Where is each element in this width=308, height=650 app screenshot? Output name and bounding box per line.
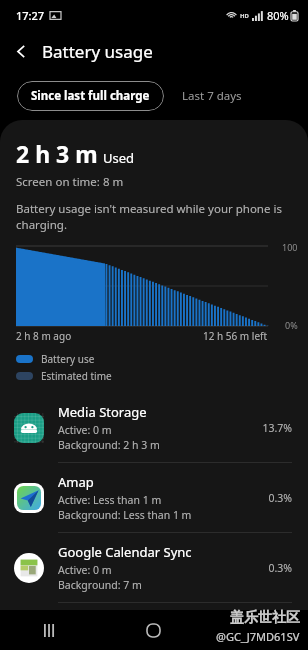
- staticText: 12 h 56 m left: [203, 329, 268, 343]
- staticText: Background: Less than 1 m: [58, 508, 192, 522]
- staticText: 0.3%: [268, 561, 292, 575]
- button[interactable]: Amap: [0, 463, 308, 532]
- staticText: Estimated time: [41, 369, 112, 383]
- button[interactable]: Since last full charge: [17, 81, 164, 111]
- staticText: 2 h 3 m: [16, 138, 98, 169]
- staticText: Used: [103, 149, 135, 167]
- staticText: 17:27: [16, 8, 45, 23]
- staticText: Battery use: [41, 352, 95, 366]
- staticText: Screen on time: 8 m: [16, 174, 124, 190]
- button[interactable]: Media Storage: [0, 393, 308, 462]
- staticText: Background: 7 m: [58, 578, 142, 592]
- button[interactable]: Google Calendar Sync: [0, 533, 308, 602]
- staticText: Battery usage: [42, 40, 153, 63]
- staticText: HD: [240, 12, 249, 20]
- staticText: Battery usage isn't measured while your …: [16, 201, 292, 232]
- button[interactable]: Back: [0, 30, 42, 72]
- staticText: @GC_J7MD61SV: [216, 629, 300, 644]
- staticText: Last 7 days: [182, 88, 242, 104]
- staticText: 100: [282, 241, 298, 253]
- staticText: Since last full charge: [31, 88, 150, 104]
- staticText: 13.7%: [262, 421, 292, 435]
- staticText: Active: 0 m: [58, 563, 112, 577]
- button[interactable]: WeiboIntl: [0, 603, 308, 610]
- button[interactable]: Home: [102, 610, 205, 650]
- staticText: 80%: [267, 8, 289, 23]
- staticText: 2 h 8 m ago: [16, 329, 72, 343]
- staticText: Google Calendar Sync: [58, 543, 192, 561]
- staticText: 0.3%: [268, 491, 292, 505]
- staticText: 盖乐世社区: [230, 609, 300, 627]
- staticText: Amap: [58, 473, 94, 491]
- button[interactable]: Last 7 days: [164, 81, 260, 111]
- staticText: Active: 0 m: [58, 423, 112, 437]
- staticText: 0%: [285, 319, 298, 331]
- staticText: Active: Less than 1 m: [58, 493, 162, 507]
- button[interactable]: Recents: [0, 610, 102, 650]
- staticText: Media Storage: [58, 403, 147, 421]
- staticText: Background: 2 h 3 m: [58, 438, 160, 452]
- button[interactable]: Back: [205, 610, 308, 650]
